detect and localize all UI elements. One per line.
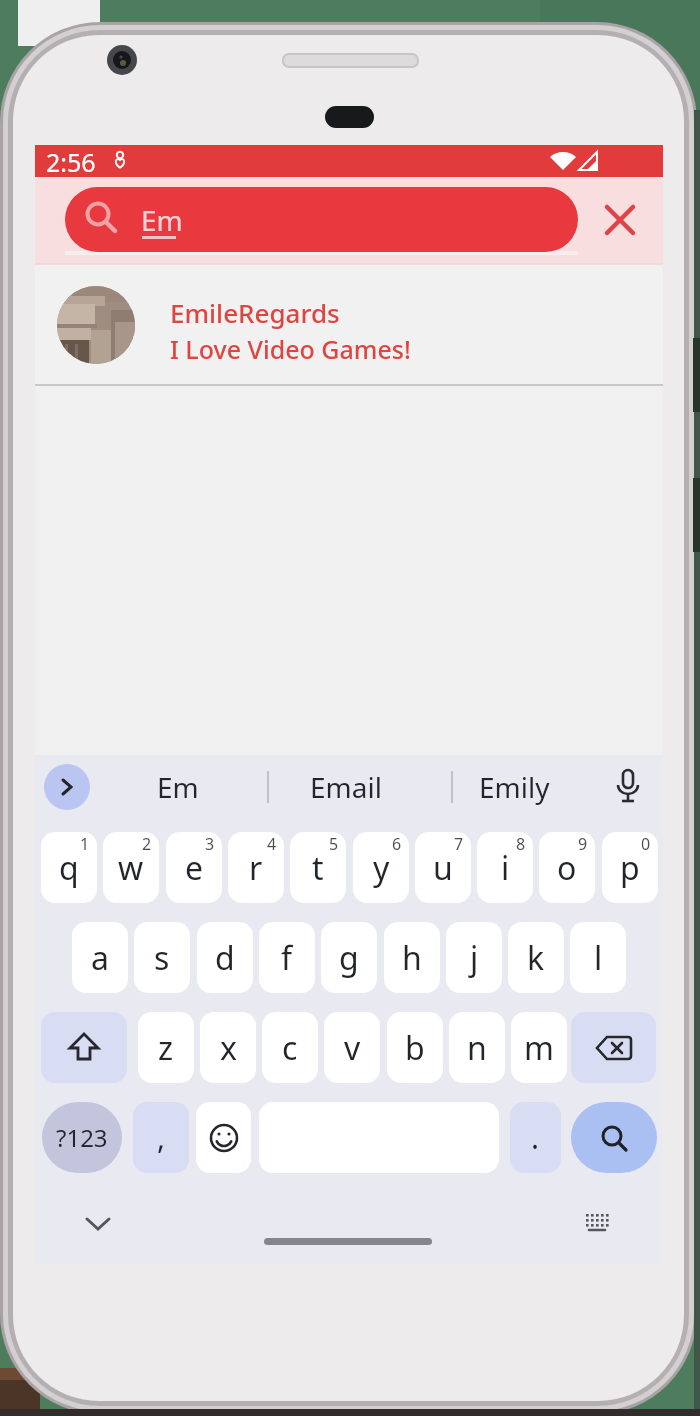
staticText: q	[59, 846, 79, 890]
button[interactable]	[571, 1102, 657, 1173]
button[interactable]: i	[477, 832, 533, 903]
button[interactable]: Em	[65, 187, 578, 252]
button[interactable]	[571, 1012, 656, 1083]
button[interactable]: l	[570, 922, 626, 993]
staticText: ,	[157, 1117, 166, 1158]
staticText: 4	[267, 833, 277, 855]
staticText: Email	[310, 768, 382, 806]
staticText: z	[158, 1026, 174, 1070]
staticText: ?123	[56, 1121, 108, 1154]
staticText: 3	[205, 833, 215, 855]
staticText: o	[557, 846, 577, 890]
button[interactable]: b	[387, 1012, 443, 1083]
staticText: d	[215, 936, 235, 980]
staticText: 2:56	[46, 145, 96, 177]
staticText: e	[185, 846, 204, 890]
staticText: t	[312, 846, 324, 890]
button[interactable]: p	[602, 832, 658, 903]
button[interactable]: Em	[146, 765, 210, 809]
staticText: k	[527, 936, 545, 980]
staticText: s	[154, 936, 170, 980]
button[interactable]	[264, 1238, 432, 1245]
button[interactable]: z	[138, 1012, 194, 1083]
staticText: g	[339, 936, 359, 980]
staticText: w	[118, 846, 144, 890]
button[interactable]: h	[384, 922, 440, 993]
staticText: n	[467, 1026, 487, 1070]
staticText: 2	[142, 833, 152, 855]
button[interactable]: Emily	[464, 765, 564, 809]
button[interactable]: f	[259, 922, 315, 993]
button[interactable]	[84, 1216, 112, 1232]
staticText: b	[405, 1026, 425, 1070]
button[interactable]: .	[510, 1102, 561, 1173]
staticText: I Love Video Games!	[170, 332, 411, 366]
button[interactable]: k	[508, 922, 564, 993]
button[interactable]: r	[228, 832, 284, 903]
button[interactable]: Email	[296, 765, 396, 809]
button[interactable]: ?123	[42, 1102, 122, 1173]
staticText: l	[594, 936, 603, 980]
button[interactable]	[583, 1212, 611, 1234]
staticText: .	[531, 1117, 540, 1158]
button[interactable]: u	[415, 832, 471, 903]
button[interactable]: ,	[133, 1102, 189, 1173]
staticText: 6	[392, 833, 402, 855]
button[interactable]: o	[539, 832, 595, 903]
staticText: x	[220, 1026, 237, 1070]
staticText: y	[373, 846, 390, 890]
staticText: 1	[80, 833, 90, 855]
button[interactable]: t	[290, 832, 346, 903]
staticText: Em	[141, 201, 183, 239]
staticText: 5	[329, 833, 339, 855]
staticText: Emily	[479, 768, 550, 806]
staticText: 0	[641, 833, 651, 855]
button[interactable]	[605, 205, 635, 235]
button[interactable]: d	[197, 922, 253, 993]
staticText: m	[524, 1026, 554, 1070]
button[interactable]: m	[511, 1012, 567, 1083]
button[interactable]: y	[353, 832, 409, 903]
button[interactable]: s	[134, 922, 190, 993]
button[interactable]	[35, 264, 663, 385]
staticText: 7	[454, 833, 464, 855]
button[interactable]: w	[103, 832, 159, 903]
staticText: i	[501, 846, 510, 890]
staticText: 9	[578, 833, 588, 855]
staticText: j	[470, 936, 479, 980]
button[interactable]: n	[449, 1012, 505, 1083]
staticText: p	[620, 846, 640, 890]
button[interactable]: x	[200, 1012, 256, 1083]
button[interactable]	[41, 1012, 127, 1083]
staticText: EmileRegards	[170, 295, 340, 330]
button[interactable]: g	[321, 922, 377, 993]
staticText: 8	[516, 833, 526, 855]
button[interactable]	[196, 1102, 251, 1173]
staticText: h	[402, 936, 422, 980]
staticText: a	[91, 936, 109, 980]
button[interactable]: a	[72, 922, 128, 993]
staticText: c	[282, 1026, 298, 1070]
staticText: u	[433, 846, 453, 890]
button[interactable]	[614, 768, 642, 806]
button[interactable]: j	[446, 922, 502, 993]
button[interactable]: v	[324, 1012, 380, 1083]
staticText: f	[281, 936, 293, 980]
staticText: r	[249, 846, 263, 890]
staticText: Em	[157, 768, 199, 806]
button[interactable]: q	[41, 832, 97, 903]
staticText: v	[344, 1026, 361, 1070]
button[interactable]	[44, 764, 90, 810]
button[interactable]: c	[262, 1012, 318, 1083]
button[interactable]: e	[166, 832, 222, 903]
